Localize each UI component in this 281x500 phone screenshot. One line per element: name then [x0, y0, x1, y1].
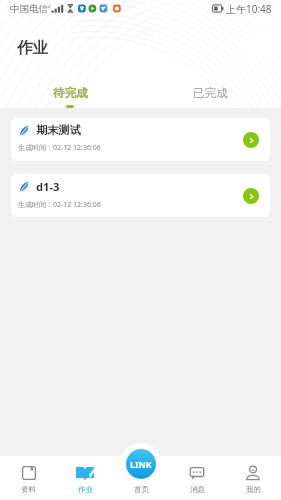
staticText: 待完成 [53, 86, 88, 100]
staticText: 资料 [21, 485, 36, 494]
button[interactable]: 资料 [0, 456, 57, 500]
staticText: d1-3 [36, 179, 60, 194]
button[interactable]: 作业 [57, 456, 113, 500]
staticText: 生成时间：02-12 12:36:06 [18, 200, 101, 210]
staticText: 消息 [190, 485, 205, 494]
staticText: 我的 [246, 485, 261, 494]
staticText: 生成时间：02-12 12:36:06 [18, 143, 101, 153]
button[interactable]: 消息 [169, 456, 225, 500]
staticText: 期末测试 [36, 123, 81, 137]
button[interactable]: Open d1-3 [243, 188, 259, 204]
button[interactable]: 待完成 [0, 84, 140, 108]
button[interactable]: Open 期末测试 [243, 132, 259, 148]
button[interactable]: d1-3 [11, 174, 270, 217]
button[interactable]: 我的 [225, 456, 281, 500]
staticText: 作业 [78, 485, 93, 494]
button[interactable]: 已完成 [140, 84, 281, 108]
staticText: 首页 [134, 485, 149, 494]
staticText: 中国电信 [10, 3, 48, 15]
staticText: 已完成 [193, 86, 228, 100]
button[interactable]: LINK [126, 449, 156, 479]
staticText: 作业 [17, 38, 48, 58]
button[interactable]: 首页 [113, 456, 169, 500]
staticText: 上午10:48 [226, 2, 272, 16]
button[interactable]: 期末测试 [11, 118, 270, 161]
staticText: LINK [130, 458, 152, 470]
